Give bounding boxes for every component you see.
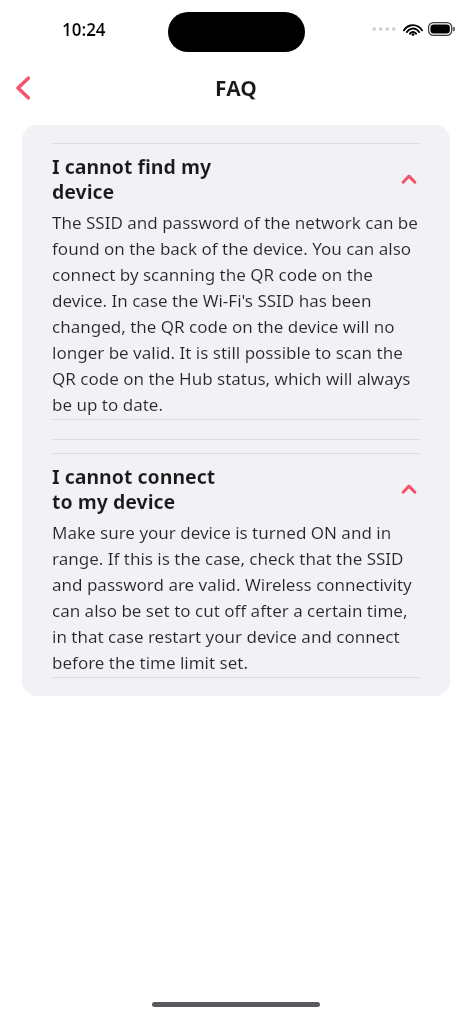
staticText: The SSID and password of the network can… bbox=[52, 211, 420, 416]
staticText: I cannot find my device bbox=[52, 153, 225, 205]
other: Collapse bbox=[398, 168, 420, 190]
button[interactable]: I cannot connect to my device bbox=[52, 454, 420, 517]
staticText: FAQ bbox=[215, 74, 257, 103]
other: Collapse bbox=[398, 478, 420, 500]
staticText: 10:24 bbox=[62, 18, 106, 41]
staticText: I cannot connect to my device bbox=[52, 463, 225, 515]
button[interactable]: I cannot find my device bbox=[52, 144, 420, 207]
staticText: Make sure your device is turned ON and i… bbox=[52, 521, 420, 674]
button[interactable]: Back bbox=[0, 65, 46, 111]
